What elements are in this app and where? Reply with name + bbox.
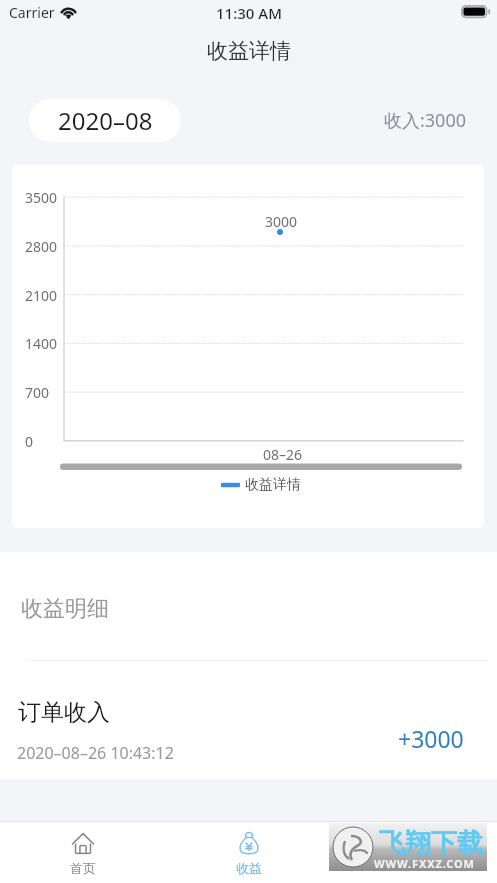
staticText: 700 (25, 383, 50, 402)
staticText: 收益详情 (245, 476, 301, 494)
button[interactable]: 2020–08 (29, 99, 181, 142)
staticText: 2020–08 (58, 104, 153, 137)
staticText: 2020–08–26 10:43:12 (17, 742, 174, 763)
staticText: +3000 (398, 723, 464, 753)
button[interactable]: Earnings (186, 826, 312, 883)
staticText: 收益 (236, 860, 262, 876)
staticText: 收益明细 (21, 595, 109, 623)
staticText: Carrier (9, 3, 55, 22)
staticText: 3500 (25, 188, 58, 207)
staticText: 11:30 AM (216, 3, 282, 23)
staticText: 08–26 (263, 445, 303, 464)
staticText: WWW.FXXZ.COM (374, 856, 475, 871)
button[interactable]: 订单收入 (0, 670, 497, 775)
staticText: 首页 (70, 860, 96, 876)
staticText: 收益详情 (207, 38, 291, 64)
other: Home (72, 833, 94, 854)
staticText: 飞翔下载 (379, 827, 483, 860)
button[interactable]: Home (20, 826, 146, 883)
staticText: 0 (25, 432, 34, 451)
staticText: 订单收入 (18, 698, 110, 727)
staticText: 1400 (25, 334, 58, 353)
staticText: 3000 (265, 212, 298, 231)
staticText: 收入:3000 (384, 108, 467, 133)
other: Earnings (239, 832, 259, 855)
staticText: 2800 (25, 237, 58, 256)
other: Wi-Fi (59, 4, 79, 20)
staticText: 2100 (25, 286, 58, 305)
